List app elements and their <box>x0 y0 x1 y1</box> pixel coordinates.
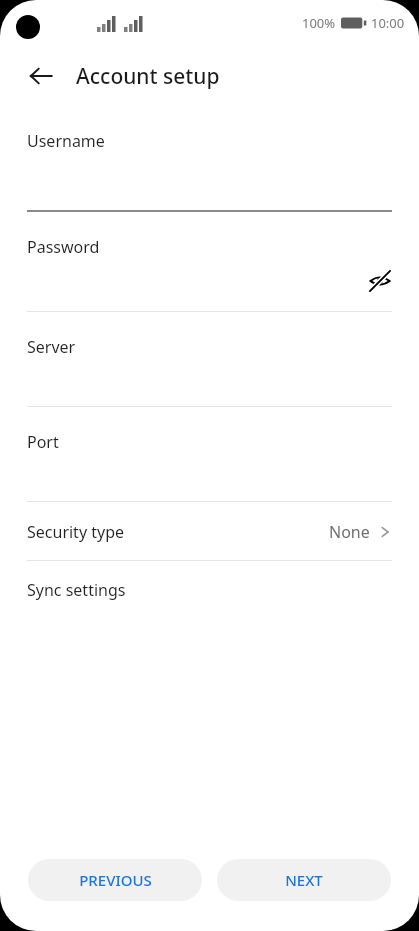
button[interactable]: Password <box>0 212 419 312</box>
staticText: Port <box>27 431 59 453</box>
staticText: None <box>329 521 370 543</box>
button[interactable]: Security type <box>0 502 419 561</box>
staticText: Username <box>27 130 105 152</box>
staticText: Sync settings <box>27 579 126 601</box>
button[interactable]: PREVIOUS <box>28 859 202 901</box>
staticText: Password <box>27 236 100 258</box>
button[interactable]: Port <box>0 407 419 502</box>
button[interactable]: Username <box>0 104 419 212</box>
staticText: NEXT <box>285 870 323 890</box>
button[interactable]: Sync settings <box>0 561 419 619</box>
staticText: 100% <box>302 14 336 32</box>
staticText: Security type <box>27 521 125 543</box>
button[interactable]: Back <box>15 50 67 102</box>
button[interactable]: Server <box>0 312 419 407</box>
staticText: Server <box>27 336 76 358</box>
staticText: 10:00 <box>371 14 405 32</box>
staticText: Account setup <box>76 62 220 91</box>
button[interactable]: Toggle password visibility <box>363 264 397 298</box>
button[interactable]: NEXT <box>217 859 391 901</box>
staticText: PREVIOUS <box>79 870 152 890</box>
